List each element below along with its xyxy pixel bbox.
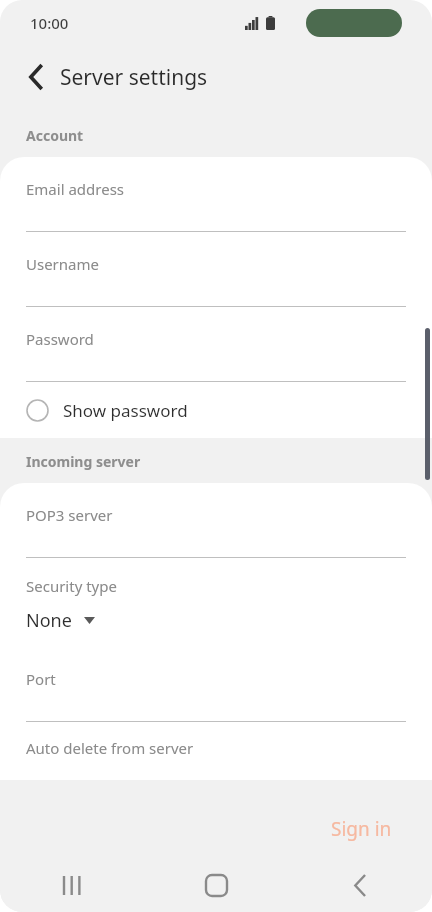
- staticText: Account: [26, 126, 84, 145]
- staticText: Incoming server: [26, 452, 141, 471]
- staticText: Sign in: [331, 816, 392, 842]
- button[interactable]: Email address: [0, 157, 432, 232]
- button[interactable]: Back: [16, 57, 56, 97]
- staticText: Username: [26, 254, 99, 274]
- staticText: None: [26, 608, 72, 633]
- button[interactable]: Home: [144, 858, 288, 912]
- staticText: POP3 server: [26, 505, 113, 525]
- button[interactable]: Back: [288, 858, 432, 912]
- button[interactable]: Username: [0, 232, 432, 307]
- staticText: 10:00: [30, 13, 69, 33]
- staticText: Port: [26, 669, 56, 689]
- button[interactable]: Sign in: [321, 810, 402, 848]
- staticText: Show password: [63, 399, 188, 422]
- button[interactable]: Security type: [0, 558, 432, 647]
- staticText: Security type: [26, 576, 117, 596]
- button[interactable]: Show password: [0, 382, 432, 438]
- button[interactable]: Password: [0, 307, 432, 382]
- button[interactable]: POP3 server: [0, 483, 432, 558]
- staticText: Server settings: [60, 63, 208, 92]
- staticText: Auto delete from server: [26, 738, 194, 758]
- button[interactable]: Recents: [0, 858, 144, 912]
- staticText: Password: [26, 329, 94, 349]
- staticText: Email address: [26, 179, 125, 199]
- button[interactable]: Port: [0, 647, 432, 722]
